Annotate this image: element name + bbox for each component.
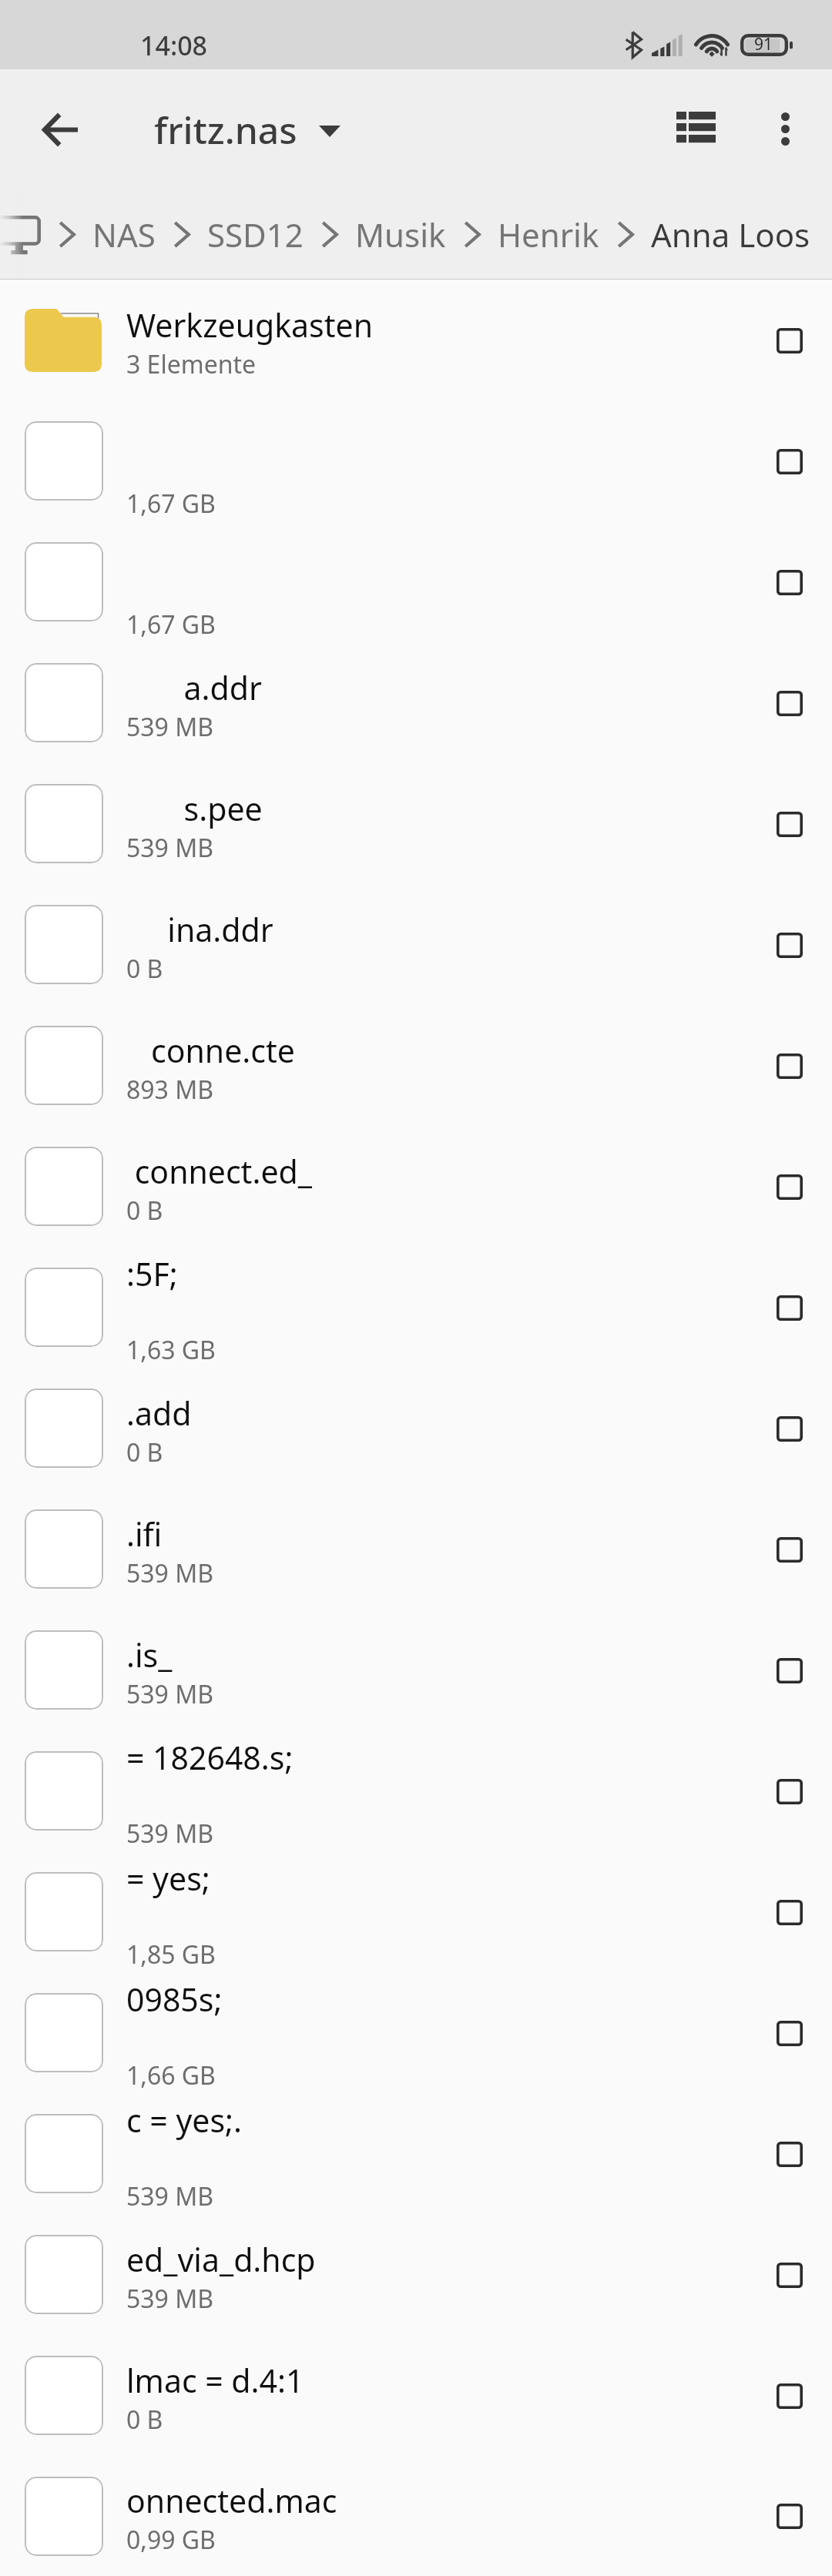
button[interactable]: More options [748, 92, 822, 166]
button[interactable]: = 182648.s; [0, 1730, 832, 1851]
button[interactable]: ina.ddr [0, 884, 832, 1005]
button[interactable]: conne.cte [0, 1005, 832, 1126]
staticText: 1,63 GB [126, 1333, 216, 1367]
button[interactable]: SSD12 [207, 206, 304, 263]
button[interactable]: NAS [92, 206, 156, 263]
button[interactable]: fritz.nas [143, 97, 351, 162]
staticText: connect.ed_ [126, 1150, 312, 1193]
button[interactable]: Select [762, 1764, 817, 1819]
button[interactable]: Select [762, 1884, 817, 1940]
button[interactable]: This device [0, 216, 41, 254]
button[interactable]: = yes; [0, 1851, 832, 1972]
button[interactable]: s.pee [0, 763, 832, 884]
staticText: 0 B [126, 1194, 163, 1228]
button[interactable]: c = yes;. [0, 2093, 832, 2214]
button[interactable]: Select [762, 2368, 817, 2424]
staticText: ed_via_d.hcp [126, 2238, 316, 2281]
button[interactable]: .ifi [0, 1489, 832, 1610]
staticText: a.ddr [126, 666, 262, 709]
staticText: 539 MB [126, 831, 214, 865]
staticText: = 182648.s; [126, 1736, 294, 1779]
button[interactable]: lmac = d.4:1 [0, 2335, 832, 2456]
staticText: 0985s; [126, 1978, 223, 2021]
button[interactable]: 1,67 GB [0, 521, 832, 642]
staticText: 3 Elemente [126, 347, 257, 381]
button[interactable]: Musik [355, 206, 446, 263]
button[interactable]: Select [762, 2126, 817, 2182]
button[interactable]: Select [762, 1280, 817, 1335]
button[interactable]: onnected.mac [0, 2456, 832, 2576]
staticText: 539 MB [126, 710, 214, 744]
button[interactable]: Select [762, 1159, 817, 1214]
button[interactable]: Select [762, 1038, 817, 1094]
staticText: fritz.nas [154, 105, 297, 155]
button[interactable]: :5F; [0, 1247, 832, 1368]
staticText: 14:08 [140, 28, 208, 63]
button[interactable]: 0985s; [0, 1972, 832, 2093]
button[interactable]: 1,67 GB [0, 400, 832, 521]
staticText: 539 MB [126, 2282, 214, 2316]
staticText: .ifi [126, 1512, 163, 1556]
staticText: 0 B [126, 952, 163, 986]
button[interactable]: .add [0, 1368, 832, 1489]
button[interactable]: Select [762, 796, 817, 852]
button[interactable]: .is_ [0, 1610, 832, 1730]
staticText: c = yes;. [126, 2099, 243, 2142]
button[interactable]: Henrik [498, 206, 599, 263]
staticText: 539 MB [126, 1817, 214, 1851]
button[interactable]: Select [762, 1643, 817, 1698]
staticText: :5F; [126, 1252, 178, 1295]
staticText: .is_ [126, 1633, 173, 1677]
staticText: 539 MB [126, 1677, 214, 1711]
staticText: ina.ddr [126, 908, 273, 951]
staticText: 1,66 GB [126, 2058, 216, 2092]
button[interactable]: Select [762, 2005, 817, 2061]
button[interactable]: Select [762, 2247, 817, 2303]
staticText: 539 MB [126, 2179, 214, 2213]
button[interactable]: Select [762, 434, 817, 489]
staticText: .add [126, 1392, 192, 1435]
button[interactable]: Anna Loos [651, 206, 810, 263]
button[interactable]: Werkzeugkasten [0, 280, 832, 400]
staticText: Werkzeugkasten [126, 303, 374, 347]
button[interactable]: Switch view [659, 92, 733, 166]
button[interactable]: Select [762, 1522, 817, 1577]
staticText: s.pee [126, 787, 263, 830]
staticText: 1,67 GB [126, 608, 216, 641]
staticText: 0 B [126, 2403, 163, 2437]
staticText: 91 [754, 33, 773, 55]
staticText: lmac = d.4:1 [126, 2359, 304, 2402]
button[interactable]: Select [762, 917, 817, 973]
staticText: onnected.mac [126, 2479, 337, 2522]
button[interactable]: Select [762, 2488, 817, 2544]
button[interactable]: Select [762, 675, 817, 731]
staticText: = yes; [126, 1857, 210, 1900]
button[interactable]: connect.ed_ [0, 1126, 832, 1247]
staticText: 0 B [126, 1435, 163, 1469]
staticText: 539 MB [126, 1556, 214, 1590]
staticText: conne.cte [126, 1029, 295, 1072]
staticText: 1,85 GB [126, 1938, 216, 1971]
button[interactable]: Select [762, 313, 817, 368]
button[interactable]: ed_via_d.hcp [0, 2214, 832, 2335]
button[interactable]: Select [762, 1401, 817, 1456]
staticText: 893 MB [126, 1073, 214, 1107]
button[interactable]: a.ddr [0, 642, 832, 763]
button[interactable]: Back [24, 92, 98, 166]
staticText: 1,67 GB [126, 487, 216, 521]
button[interactable]: Select [762, 554, 817, 610]
staticText: 0,99 GB [126, 2523, 216, 2557]
